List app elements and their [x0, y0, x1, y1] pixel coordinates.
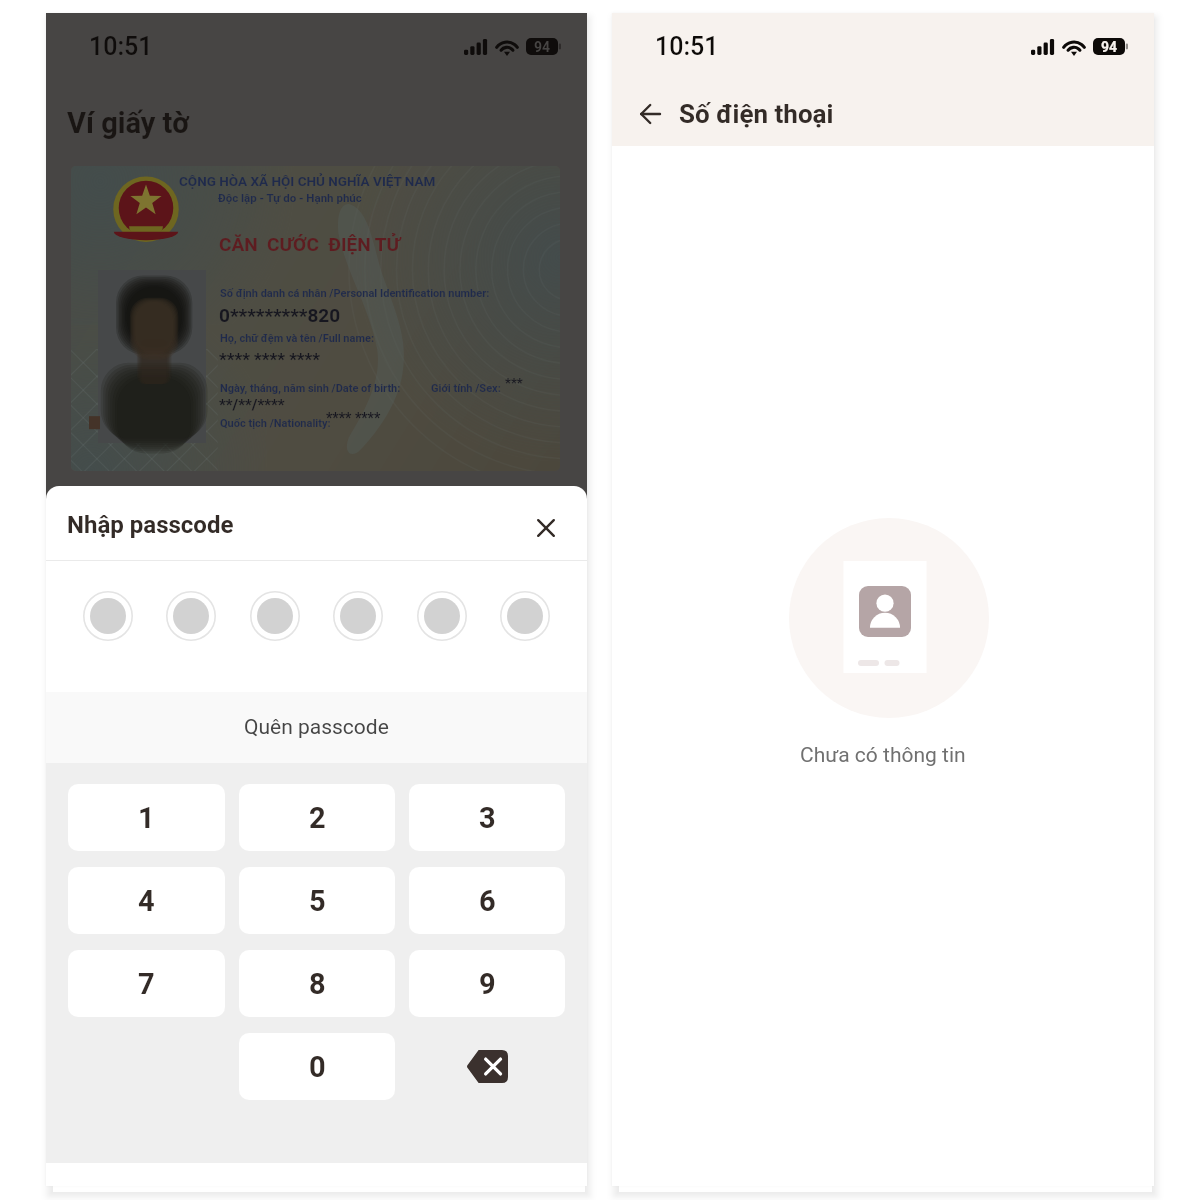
button[interactable]: Căn cước điện tử — [71, 166, 560, 471]
staticText: 7 — [138, 967, 155, 1001]
staticText: Số định danh cá nhân /Personal Identific… — [220, 287, 490, 300]
staticText: 4 — [138, 884, 155, 918]
staticText: Quốc tịch /Nationality: — [220, 417, 331, 430]
staticText: 8 — [309, 967, 326, 1001]
staticText: Nhập passcode — [67, 511, 234, 539]
button[interactable]: 0 — [239, 1033, 395, 1100]
staticText: **** **** — [326, 410, 381, 426]
staticText: 3 — [479, 801, 496, 835]
staticText: **** **** **** — [219, 349, 321, 369]
staticText: Số điện thoại — [679, 99, 834, 129]
staticText: Độc lập - Tự do - Hạnh phúc — [218, 191, 362, 204]
button[interactable]: Back — [629, 93, 671, 135]
staticText: 0 — [309, 1050, 326, 1084]
staticText: Giới tính /Sex: — [431, 382, 501, 395]
button[interactable]: 1 — [68, 784, 225, 851]
staticText: 94 — [534, 39, 551, 55]
staticText: 6 — [479, 884, 496, 918]
staticText: 1 — [138, 801, 155, 835]
staticText: 9 — [479, 967, 496, 1001]
staticText: 5 — [309, 884, 326, 918]
button[interactable]: 5 — [239, 867, 395, 934]
staticText: 2 — [309, 801, 326, 835]
button[interactable]: 7 — [68, 950, 225, 1017]
staticText: **/**/**** — [219, 396, 285, 414]
button[interactable]: 6 — [409, 867, 565, 934]
button[interactable]: 3 — [409, 784, 565, 851]
button[interactable]: Close — [529, 511, 563, 545]
staticText: 0*********820 — [219, 304, 341, 326]
button[interactable]: 9 — [409, 950, 565, 1017]
button[interactable]: 8 — [239, 950, 395, 1017]
button[interactable]: Backspace — [409, 1033, 565, 1100]
staticText: Họ, chữ đệm và tên /Full name: — [220, 332, 374, 345]
staticText: Ngày, tháng, năm sinh /Date of birth: — [220, 382, 401, 395]
staticText: Ví giấy tờ — [67, 106, 190, 140]
staticText: CỘNG HÒA XÃ HỘI CHỦ NGHĨA VIỆT NAM — [179, 173, 436, 189]
button[interactable]: 4 — [68, 867, 225, 934]
staticText: 10:51 — [89, 32, 153, 61]
staticText: *** — [505, 375, 523, 390]
button[interactable]: Quên passcode — [46, 692, 587, 763]
staticText: 10:51 — [655, 32, 719, 61]
staticText: Quên passcode — [244, 715, 389, 740]
staticText: CĂN CƯỚC ĐIỆN TỬ — [219, 233, 401, 255]
staticText: 94 — [1101, 39, 1118, 55]
button[interactable]: 2 — [239, 784, 395, 851]
staticText: Chưa có thông tin — [800, 743, 966, 768]
